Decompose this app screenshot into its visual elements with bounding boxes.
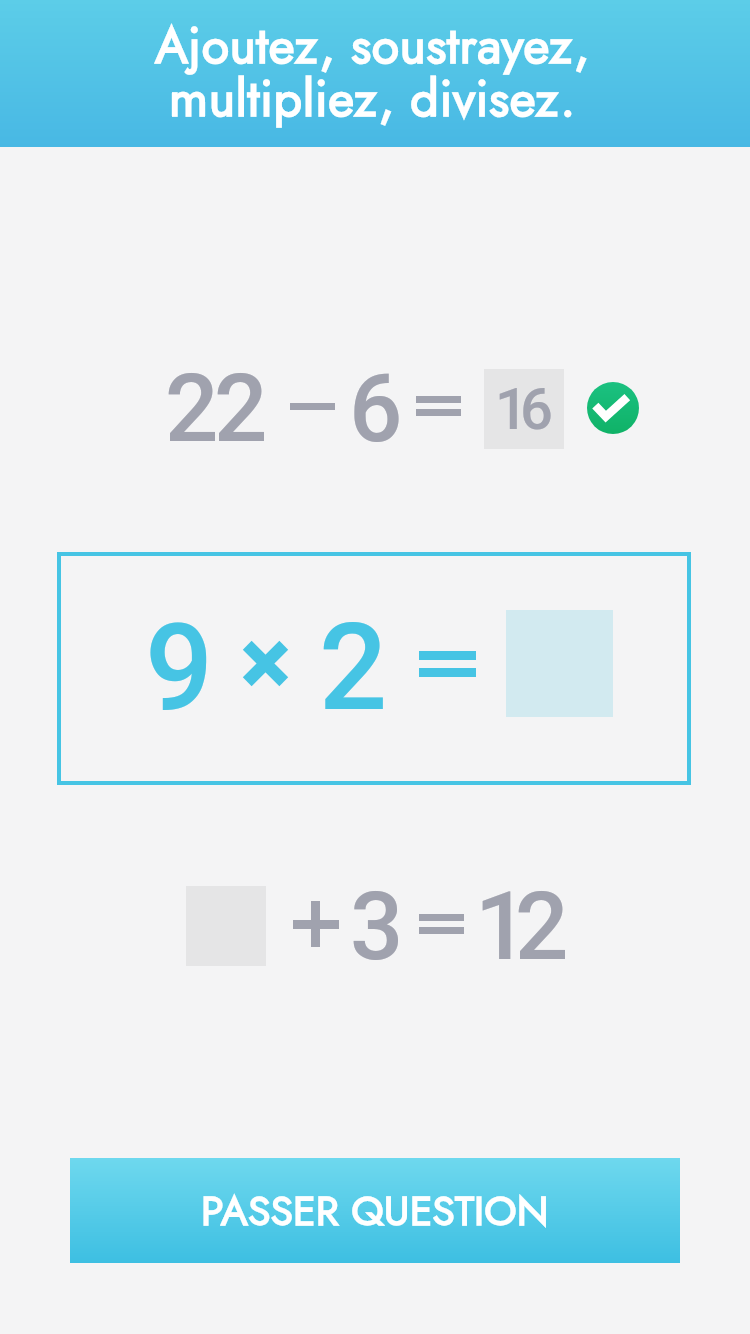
staticText: 3 — [350, 872, 404, 982]
staticText: 1 — [475, 872, 529, 982]
button[interactable] — [150, 355, 650, 460]
staticText: 1 — [495, 375, 528, 443]
button[interactable]: PASSER QUESTION — [70, 1158, 680, 1263]
button[interactable] — [180, 880, 570, 972]
staticText: 2 — [319, 598, 388, 739]
staticText: PASSER QUESTION — [201, 1181, 549, 1240]
staticText: 9 — [145, 599, 214, 740]
staticText: Ajoutez, soustrayez, multipliez, divisez… — [155, 9, 590, 134]
staticText: 6 — [520, 375, 553, 443]
other: Correct answer — [587, 382, 639, 434]
staticText: 2 — [165, 354, 219, 464]
staticText: 2 — [214, 354, 268, 464]
staticText: 2 — [515, 872, 569, 982]
staticText: 6 — [349, 354, 403, 464]
button[interactable]: 9 times 2 equals — [57, 552, 691, 785]
